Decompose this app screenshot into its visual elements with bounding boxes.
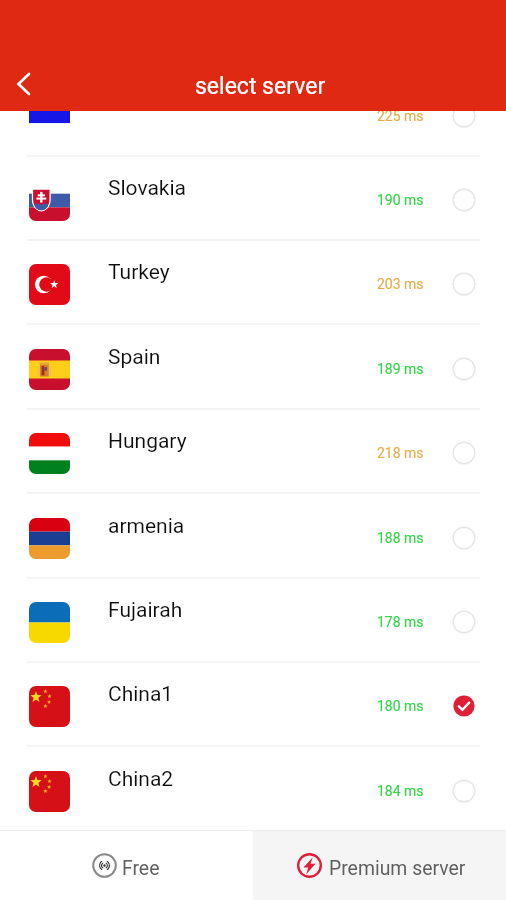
staticText: 218 ms xyxy=(377,445,424,461)
button[interactable]: Hungary xyxy=(0,409,506,493)
button[interactable]: Spain xyxy=(0,325,506,409)
staticText: Hungary xyxy=(108,429,187,454)
staticText: select server xyxy=(195,73,326,100)
staticText: Fujairah xyxy=(108,598,183,623)
button[interactable]: Russia xyxy=(0,72,506,156)
button[interactable]: Free xyxy=(0,831,253,900)
staticText: 184 ms xyxy=(377,783,424,799)
button[interactable]: Slovakia xyxy=(0,156,506,240)
staticText: Russia xyxy=(108,92,171,117)
staticText: China1 xyxy=(108,682,174,707)
staticText: armenia xyxy=(108,514,185,539)
button[interactable]: China1 xyxy=(0,662,506,746)
button[interactable]: Back xyxy=(0,55,56,111)
button[interactable]: Fujairah xyxy=(0,578,506,662)
staticText: Free xyxy=(122,857,160,880)
button[interactable]: China2 xyxy=(0,747,506,831)
staticText: 188 ms xyxy=(377,530,424,546)
button[interactable]: Turkey xyxy=(0,240,506,324)
staticText: 189 ms xyxy=(377,361,424,377)
staticText: 225 ms xyxy=(377,108,424,124)
staticText: 203 ms xyxy=(377,276,424,292)
staticText: Slovakia xyxy=(108,176,187,201)
staticText: Spain xyxy=(108,345,161,370)
button[interactable]: armenia xyxy=(0,494,506,578)
staticText: 190 ms xyxy=(377,192,424,208)
staticText: China2 xyxy=(108,767,174,792)
staticText: Premium server xyxy=(329,857,466,880)
button[interactable]: Premium server xyxy=(253,831,506,900)
staticText: 180 ms xyxy=(377,698,424,714)
staticText: Turkey xyxy=(108,260,170,285)
staticText: 178 ms xyxy=(377,614,424,630)
